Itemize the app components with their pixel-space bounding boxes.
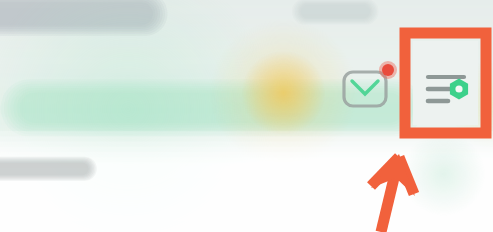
button[interactable]: Messages [0, 0, 493, 232]
